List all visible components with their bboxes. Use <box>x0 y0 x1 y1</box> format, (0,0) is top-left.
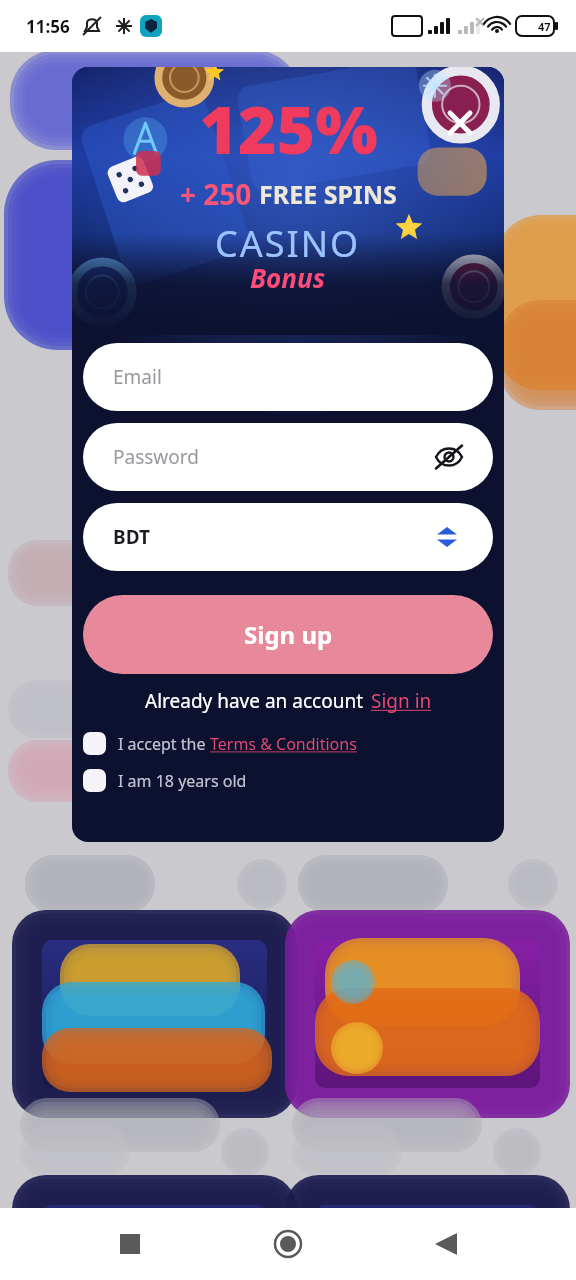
button[interactable]: Show password <box>429 437 469 477</box>
staticText: 47 <box>538 19 551 34</box>
staticText: 125% <box>199 83 378 173</box>
staticText: BDT <box>113 524 150 550</box>
button[interactable]: I accept the <box>83 732 504 755</box>
button[interactable]: Back <box>418 1216 474 1272</box>
button[interactable]: Email <box>83 343 493 411</box>
button[interactable]: Select currency <box>429 519 465 555</box>
staticText: Password <box>113 444 199 470</box>
staticText: Bonus <box>250 260 326 295</box>
button[interactable]: BDT <box>83 503 493 571</box>
button[interactable]: Password <box>83 423 493 491</box>
staticText: Sign in <box>371 688 432 714</box>
staticText: I am 18 years old <box>118 770 247 792</box>
button[interactable]: I am 18 years old <box>83 769 504 792</box>
staticText: Email <box>113 364 162 390</box>
staticText: Sign up <box>244 618 333 651</box>
staticText: 11:56 <box>26 15 70 38</box>
button[interactable]: Terms & Conditions <box>210 733 357 755</box>
staticText: + 250 <box>180 175 259 213</box>
staticText: FREE SPINS <box>259 177 397 211</box>
button[interactable]: Recents <box>102 1216 158 1272</box>
button[interactable]: Sign up <box>83 595 493 674</box>
staticText: CASINO <box>215 219 361 268</box>
button[interactable]: Home <box>260 1216 316 1272</box>
button[interactable]: Close <box>438 101 482 145</box>
staticText: Already have an account <box>145 688 363 714</box>
button[interactable]: Sign in <box>371 688 432 714</box>
staticText: I accept the <box>118 733 210 755</box>
